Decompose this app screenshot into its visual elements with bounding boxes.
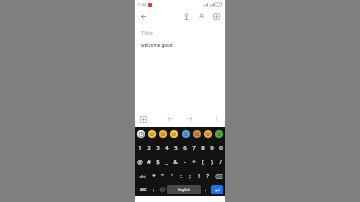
staticText: : <box>180 172 182 180</box>
staticText: 9 <box>210 144 214 152</box>
button[interactable]: - <box>180 155 189 169</box>
staticText: 7 <box>192 144 196 152</box>
button[interactable]: Enter <box>211 185 223 194</box>
button[interactable]: More options <box>211 114 222 125</box>
staticText: _ <box>165 158 168 166</box>
staticText: 1 <box>138 144 142 152</box>
button[interactable]: Pin <box>181 11 192 22</box>
staticText: & <box>173 158 178 166</box>
button[interactable]: Redo <box>184 114 195 125</box>
button[interactable]: Emoji <box>148 130 156 138</box>
staticText: 2 <box>147 144 151 152</box>
staticText: Title <box>141 29 153 37</box>
button[interactable]: ! <box>194 169 203 183</box>
staticText: ! <box>198 172 200 180</box>
staticText: =\< <box>139 174 146 179</box>
button[interactable]: 4 <box>162 140 171 155</box>
button[interactable]: 2 <box>144 140 153 155</box>
button[interactable]: $ <box>153 155 162 169</box>
button[interactable]: 1 <box>135 140 144 155</box>
staticText: 8 <box>201 144 205 152</box>
button[interactable]: Add <box>138 114 149 125</box>
button[interactable]: Keyboard settings <box>158 183 166 196</box>
button[interactable]: ) <box>207 155 216 169</box>
button[interactable]: # <box>144 155 153 169</box>
button[interactable]: Back <box>138 11 149 22</box>
button[interactable]: 6 <box>180 140 189 155</box>
staticText: 11:44 <box>137 2 146 7</box>
button[interactable]: . <box>202 183 210 196</box>
button[interactable]: Emoji <box>159 130 167 138</box>
button[interactable]: / <box>216 155 225 169</box>
button[interactable]: ( <box>198 155 207 169</box>
button[interactable]: 5 <box>171 140 180 155</box>
staticText: ? <box>206 172 209 180</box>
button[interactable]: * <box>149 169 158 183</box>
button[interactable]: Emoji <box>182 130 190 138</box>
staticText: @ <box>137 158 143 166</box>
button[interactable]: ' <box>167 169 176 183</box>
staticText: 5 <box>174 144 178 152</box>
staticText: 3 <box>156 144 160 152</box>
staticText: 0 <box>219 144 223 152</box>
staticText: ) <box>211 158 213 166</box>
button[interactable]: Emoji <box>170 130 178 138</box>
staticText: * <box>152 172 156 180</box>
button[interactable]: 3 <box>153 140 162 155</box>
staticText: ABC <box>140 187 147 192</box>
staticText: , <box>153 186 155 193</box>
staticText: / <box>219 158 222 166</box>
staticText: ' <box>171 172 173 180</box>
button[interactable]: Emoji <box>193 130 201 138</box>
button[interactable]: ABC <box>136 183 150 196</box>
button[interactable]: Emoji <box>204 130 212 138</box>
staticText: ; <box>189 172 191 180</box>
button[interactable]: English <box>167 185 201 194</box>
button[interactable]: Undo <box>165 114 176 125</box>
button[interactable]: ; <box>185 169 194 183</box>
button[interactable]: ? <box>203 169 212 183</box>
staticText: " <box>161 172 164 180</box>
button[interactable]: + <box>189 155 198 169</box>
button[interactable]: Reminder <box>196 11 207 22</box>
button[interactable]: =\< <box>135 169 149 183</box>
staticText: + <box>192 158 196 166</box>
button[interactable]: & <box>171 155 180 169</box>
staticText: ( <box>202 158 204 166</box>
button[interactable]: Backspace <box>212 169 225 183</box>
staticText: - <box>184 158 186 166</box>
button[interactable]: 8 <box>198 140 207 155</box>
staticText: 6 <box>183 144 187 152</box>
button[interactable]: 9 <box>207 140 216 155</box>
staticText: English <box>178 187 190 192</box>
staticText: # <box>147 158 151 166</box>
button[interactable]: @ <box>135 155 144 169</box>
button[interactable]: " <box>158 169 167 183</box>
button[interactable]: Emoji <box>215 130 223 138</box>
button[interactable]: 7 <box>189 140 198 155</box>
button[interactable]: Recent <box>137 130 145 138</box>
staticText: 4 <box>165 144 169 152</box>
button[interactable]: 0 <box>216 140 225 155</box>
staticText: welcome good <box>141 42 173 48</box>
staticText: . <box>205 186 207 193</box>
staticText: $ <box>156 158 160 166</box>
button[interactable]: , <box>150 183 158 196</box>
button[interactable]: : <box>176 169 185 183</box>
button[interactable]: _ <box>162 155 171 169</box>
button[interactable]: Archive <box>211 11 222 22</box>
